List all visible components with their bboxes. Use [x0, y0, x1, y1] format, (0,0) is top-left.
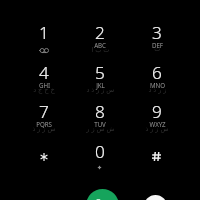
staticText: ت ب ا	[91, 45, 110, 54]
staticText: 2	[95, 21, 105, 44]
button[interactable]: 9	[131, 102, 183, 138]
staticText: 4	[39, 61, 49, 84]
button[interactable]: pound	[131, 142, 183, 178]
staticText: 8	[95, 100, 105, 123]
staticText: خ ح ج د	[33, 85, 55, 94]
staticText: س ز ر ذ	[32, 124, 56, 133]
staticText: WXYZ	[149, 120, 166, 128]
button[interactable]: 0	[74, 142, 126, 178]
staticText: DEF	[152, 41, 163, 49]
staticText: 6	[152, 61, 162, 84]
button[interactable]: Backspace	[144, 195, 167, 200]
button[interactable]: 8	[74, 102, 126, 138]
staticText: 9	[152, 100, 162, 123]
staticText: 7	[39, 100, 49, 123]
button[interactable]: Call	[86, 189, 119, 200]
staticText: 3	[152, 21, 162, 44]
button[interactable]: star	[18, 142, 70, 178]
staticText: ABC	[94, 41, 106, 49]
staticText: JKL	[96, 81, 105, 89]
staticText: GHI	[39, 81, 50, 89]
staticText: ز ر ذ د	[148, 85, 167, 94]
staticText: 5	[95, 61, 105, 84]
staticText: س ز ر ذ	[145, 124, 169, 133]
button[interactable]: 5	[74, 63, 126, 99]
button[interactable]: 3	[131, 23, 183, 59]
staticText: MNO	[150, 81, 165, 89]
button[interactable]: 2	[74, 23, 126, 59]
button[interactable]: 7	[18, 102, 70, 138]
staticText: س ز ر ذ د	[86, 85, 115, 94]
button[interactable]: 1	[18, 23, 70, 59]
staticText: ش س ز ر	[86, 124, 115, 133]
staticText: 0	[95, 140, 105, 163]
button[interactable]: 4	[18, 63, 70, 99]
staticText: TUV	[94, 120, 106, 128]
staticText: 1	[39, 21, 49, 44]
button[interactable]: 6	[131, 63, 183, 99]
staticText: ث	[154, 45, 161, 53]
staticText: PQRS	[36, 120, 52, 128]
